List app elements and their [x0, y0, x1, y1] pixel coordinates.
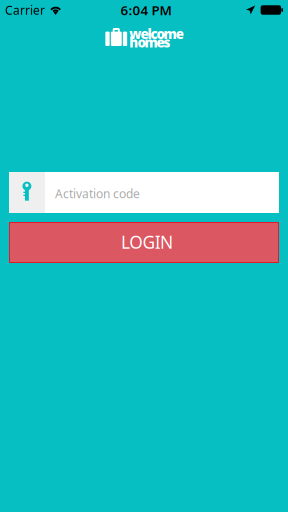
- staticText: homes: [129, 33, 171, 51]
- button[interactable]: Activation code: [9, 172, 279, 213]
- staticText: welcome: [129, 25, 184, 43]
- staticText: Activation code: [55, 185, 140, 201]
- staticText: Carrier: [5, 2, 45, 18]
- staticText: 6:04 PM: [120, 1, 171, 19]
- button[interactable]: LOGIN: [9, 222, 279, 263]
- staticText: LOGIN: [121, 230, 173, 253]
